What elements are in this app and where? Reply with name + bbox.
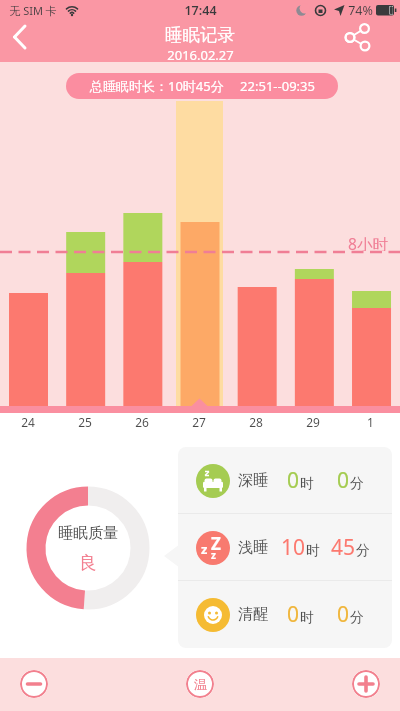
button[interactable]: 温 [186,670,214,698]
staticText: 睡眠质量 [58,524,118,542]
button[interactable] [352,670,380,698]
staticText: 分 [350,475,364,493]
staticText: 28 [249,414,263,430]
button[interactable] [20,670,48,698]
staticText: 45 [331,533,356,562]
staticText: z [201,540,208,558]
staticText: 1 [367,414,374,430]
staticText: 10 [281,533,306,562]
button[interactable]: 清醒 [178,581,392,648]
staticText: 0 [287,600,300,629]
staticText: 2016.02.27 [167,46,234,63]
staticText: 分 [356,542,370,560]
button[interactable]: 深睡 [178,447,392,514]
staticText: 总睡眠时长：10时45分 22:51--09:35 [90,77,315,95]
staticText: 无 SIM 卡 [9,3,57,18]
staticText: 0 [287,466,300,495]
staticText: 17:44 [184,2,217,18]
staticText: 0 [337,600,350,629]
staticText: 良 [79,552,97,572]
staticText: z [211,548,216,562]
staticText: 74% [348,2,373,18]
button[interactable] [340,20,376,54]
staticText: 0 [337,466,350,495]
staticText: 25 [78,414,92,430]
staticText: 睡眠记录 [165,24,235,46]
button[interactable]: 总睡眠时长：10时45分 22:51--09:35 [66,73,338,99]
staticText: 清醒 [238,605,268,624]
button[interactable]: Z [178,514,392,581]
staticText: 27 [192,414,206,430]
button[interactable] [2,20,36,54]
staticText: 浅睡 [238,538,268,557]
staticText: 分 [350,609,364,627]
staticText: Z [211,532,221,555]
staticText: 温 [194,676,207,692]
staticText: 深睡 [238,471,268,490]
staticText: 26 [135,414,149,430]
staticText: 时 [300,475,314,493]
staticText: 24 [21,414,35,430]
staticText: 时 [306,542,320,560]
staticText: 时 [300,609,314,627]
staticText: 8小时 [348,233,388,251]
staticText: 29 [306,414,320,430]
